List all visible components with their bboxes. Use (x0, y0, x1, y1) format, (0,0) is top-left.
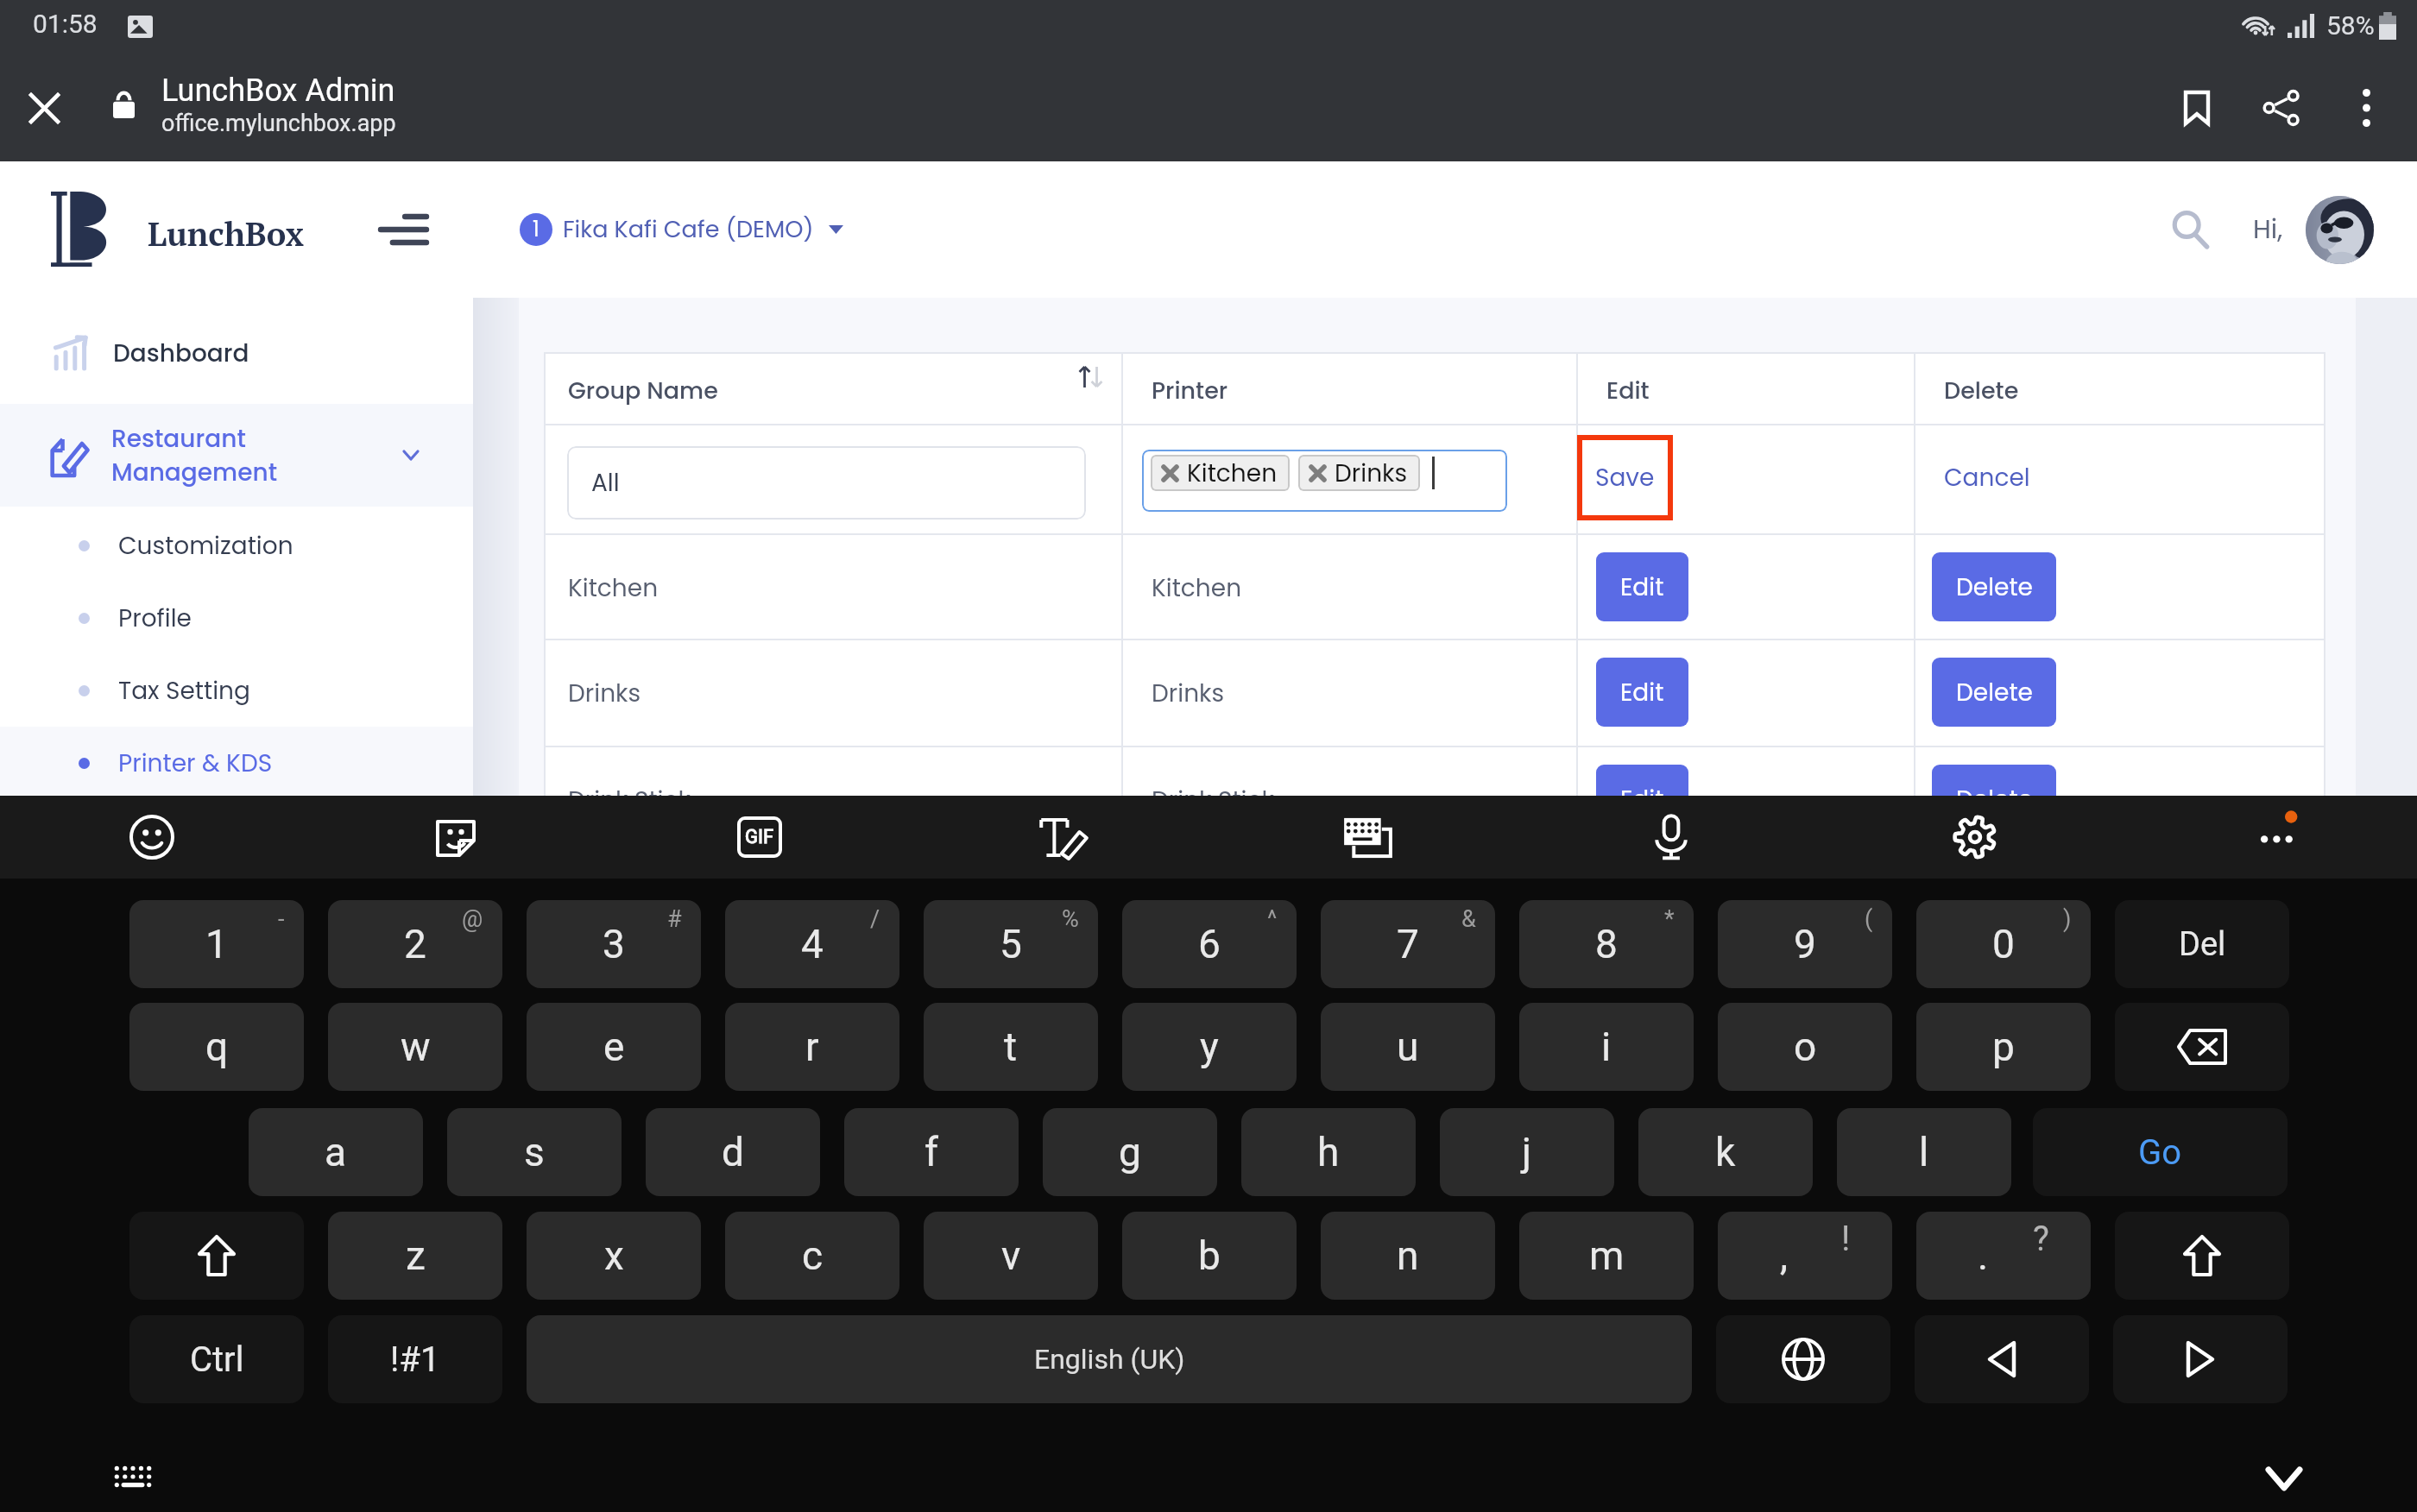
button[interactable]: 3 (527, 900, 701, 988)
button[interactable]: r (725, 1003, 899, 1091)
button[interactable]: u (1321, 1003, 1495, 1091)
button[interactable]: 1 (129, 900, 304, 988)
button[interactable]: Kitchen (1151, 455, 1290, 491)
button[interactable]: x (527, 1212, 701, 1300)
button[interactable]: t (924, 1003, 1098, 1091)
button[interactable]: d (646, 1108, 820, 1196)
staticText: LunchBox (148, 212, 304, 255)
staticText: @ (462, 905, 483, 933)
button[interactable] (1915, 1315, 2089, 1403)
button[interactable]: Dashboard (0, 302, 473, 404)
staticText: Delete (1944, 375, 2019, 407)
button[interactable] (2115, 1003, 2289, 1091)
button[interactable]: Hide keyboard (2245, 1440, 2323, 1512)
button[interactable]: Customization (0, 509, 473, 582)
button[interactable]: o (1718, 1003, 1892, 1091)
button[interactable]: Del (2115, 900, 2289, 988)
staticText: t (1004, 1024, 1018, 1070)
button[interactable]: Delete (1932, 765, 2056, 834)
button[interactable]: 7 (1321, 900, 1495, 988)
button[interactable]: , (1718, 1212, 1892, 1300)
button[interactable]: Drinks (1298, 455, 1420, 491)
button[interactable]: Delete (1932, 658, 2056, 727)
button[interactable]: a (249, 1108, 423, 1196)
button[interactable]: All (567, 446, 1086, 520)
button[interactable]: Close (4, 68, 84, 148)
staticText: Edit (1620, 676, 1664, 709)
staticText: Kitchen (1187, 457, 1278, 490)
button[interactable]: Bookmark (2155, 66, 2239, 150)
button[interactable]: Edit (1596, 658, 1688, 727)
button[interactable]: b (1122, 1212, 1297, 1300)
button[interactable]: 5 (924, 900, 1098, 988)
button[interactable]: e (527, 1003, 701, 1091)
staticText: 7 (1397, 921, 1419, 967)
button[interactable]: m (1519, 1212, 1694, 1300)
button[interactable]: g (1043, 1108, 1217, 1196)
staticText: Delete (1956, 570, 2033, 604)
button[interactable]: Save (1577, 435, 1673, 520)
button[interactable]: p (1916, 1003, 2091, 1091)
button[interactable]: Go (2033, 1108, 2288, 1196)
button[interactable]: Emoji (110, 796, 193, 879)
button[interactable]: Kitchen (1142, 450, 1507, 512)
button[interactable]: Keyboard modes (1326, 796, 1409, 879)
button[interactable]: q (129, 1003, 304, 1091)
button[interactable]: Restaurant (0, 404, 473, 507)
staticText: v (1001, 1232, 1021, 1279)
button[interactable]: 9 (1718, 900, 1892, 988)
button[interactable]: More options (2324, 66, 2408, 150)
button[interactable]: Voice input (1630, 796, 1713, 879)
button[interactable]: i (1519, 1003, 1694, 1091)
button[interactable]: 0 (1916, 900, 2091, 988)
button[interactable] (2113, 1315, 2288, 1403)
button[interactable]: Handwriting (1022, 796, 1105, 879)
button[interactable]: Delete (1932, 552, 2056, 621)
staticText: n (1397, 1232, 1419, 1279)
button[interactable]: 6 (1122, 900, 1297, 988)
button[interactable]: Share (2239, 66, 2324, 150)
button[interactable]: n (1321, 1212, 1495, 1300)
button[interactable]: 8 (1519, 900, 1694, 988)
button[interactable]: English (UK) (527, 1315, 1692, 1403)
button[interactable]: Keyboard options (94, 1438, 172, 1512)
button[interactable]: l (1837, 1108, 2011, 1196)
button[interactable]: !#1 (328, 1315, 502, 1403)
button[interactable]: 2 (328, 900, 502, 988)
button[interactable]: 1 (520, 213, 843, 246)
button[interactable] (2115, 1212, 2289, 1300)
button[interactable]: . (1916, 1212, 2091, 1300)
button[interactable]: Menu (363, 188, 445, 270)
button[interactable]: y (1122, 1003, 1297, 1091)
button[interactable]: Ctrl (129, 1315, 304, 1403)
button[interactable]: Search (2153, 192, 2229, 268)
button[interactable]: Stickers (414, 796, 497, 879)
button[interactable]: f (844, 1108, 1019, 1196)
staticText: Printer (1152, 375, 1228, 407)
staticText: w (401, 1024, 431, 1070)
button[interactable]: Edit (1596, 765, 1688, 834)
staticText: Restaurant (111, 422, 246, 456)
button[interactable]: z (328, 1212, 502, 1300)
button[interactable]: Cancel (1944, 461, 2030, 495)
button[interactable]: Profile (2306, 196, 2374, 264)
button[interactable]: c (725, 1212, 899, 1300)
button[interactable]: h (1241, 1108, 1416, 1196)
button[interactable]: j (1440, 1108, 1614, 1196)
button[interactable]: More (2237, 796, 2320, 879)
button[interactable]: v (924, 1212, 1098, 1300)
button[interactable]: s (447, 1108, 622, 1196)
button[interactable]: Tax Setting (0, 654, 473, 727)
button[interactable] (129, 1212, 304, 1300)
button[interactable] (1716, 1315, 1890, 1403)
button[interactable]: w (328, 1003, 502, 1091)
button[interactable]: Printer & KDS (0, 727, 473, 799)
button[interactable]: Profile (0, 582, 473, 654)
staticText: All (591, 466, 620, 500)
button[interactable]: k (1638, 1108, 1813, 1196)
button[interactable]: Edit (1596, 552, 1688, 621)
button[interactable]: 4 (725, 900, 899, 988)
staticText: ? (2033, 1219, 2049, 1259)
button[interactable]: GIF (718, 796, 801, 879)
button[interactable]: Settings (1934, 796, 2016, 879)
